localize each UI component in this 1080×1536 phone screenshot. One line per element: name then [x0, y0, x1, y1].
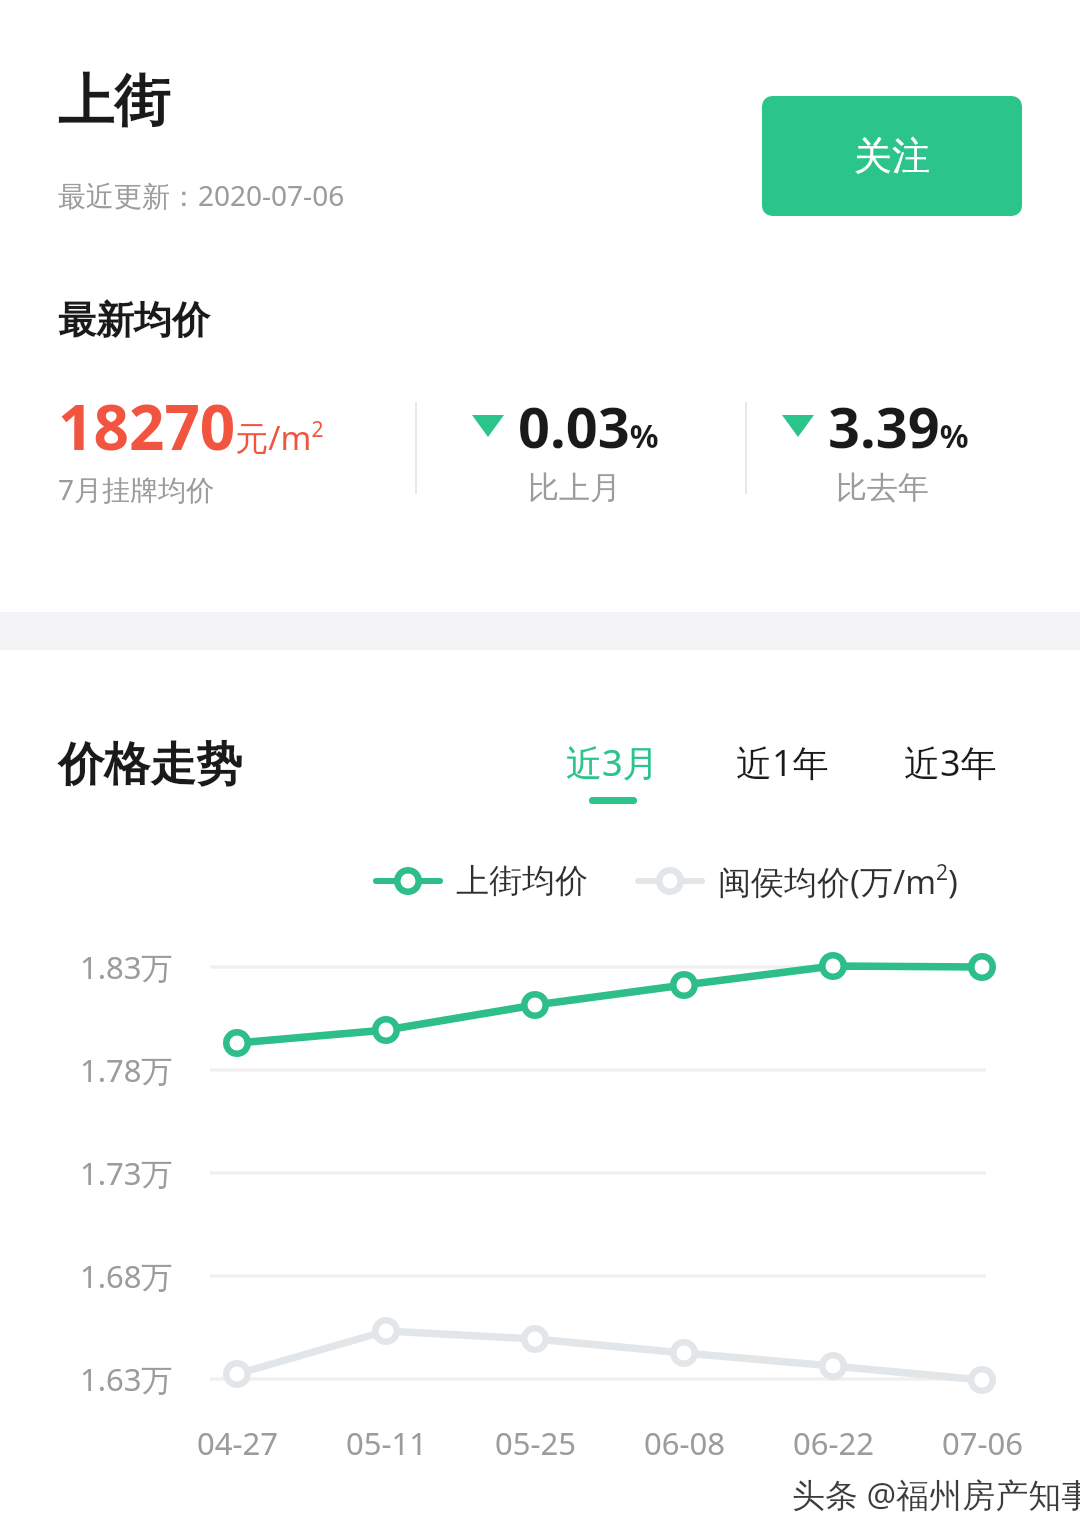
staticText: 1.73万 [80, 1152, 173, 1194]
staticText: 上街均价 [456, 860, 588, 902]
staticText: 05-11 [346, 1422, 427, 1464]
staticText: 1.83万 [80, 946, 173, 988]
button[interactable]: 关注 [762, 96, 1022, 216]
staticText: 05-25 [495, 1422, 576, 1464]
staticText: 最近更新：2020-07-06 [58, 176, 345, 214]
staticText: 最新均价 [58, 296, 210, 344]
staticText: 1.63万 [80, 1358, 173, 1400]
staticText: 1.68万 [80, 1255, 173, 1297]
staticText: 比上月 [528, 468, 621, 507]
staticText: 头条 @福州房产知事 [792, 1472, 1080, 1517]
other: Decrease [780, 410, 816, 442]
button[interactable]: 近3月 [566, 738, 659, 804]
staticText: 近3月 [566, 738, 659, 787]
staticText: 价格走势 [58, 736, 242, 794]
staticText: 近1年 [736, 738, 829, 787]
button[interactable]: 近3年 [904, 738, 997, 787]
staticText: 0.03% [518, 388, 659, 464]
staticText: 3.39% [828, 388, 969, 464]
button[interactable]: 近1年 [736, 738, 829, 787]
staticText: 关注 [854, 132, 930, 180]
staticText: 闽侯均价(万/m2) [718, 858, 958, 904]
staticText: 18270元/m2 [58, 384, 324, 468]
staticText: 07-06 [942, 1422, 1023, 1464]
staticText: 上街 [58, 66, 170, 137]
staticText: 近3年 [904, 738, 997, 787]
staticText: 1.78万 [80, 1049, 173, 1091]
staticText: 04-27 [197, 1422, 278, 1464]
staticText: 7月挂牌均价 [58, 470, 215, 508]
staticText: 比去年 [836, 468, 929, 507]
staticText: 06-08 [644, 1422, 725, 1464]
staticText: 06-22 [793, 1422, 874, 1464]
other: Decrease [470, 410, 506, 442]
